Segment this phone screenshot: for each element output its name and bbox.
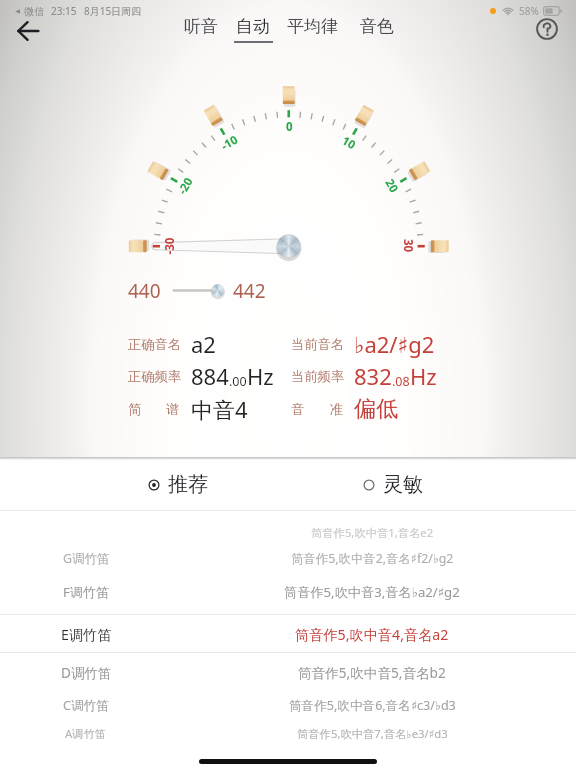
staticText: 正确频率 [128,368,182,385]
staticText: A调竹笛 [65,726,107,741]
staticText: E调竹笛 [61,625,112,644]
staticText: 推荐 [168,472,208,497]
staticText: 筒音作5,吹中音4,音名a2 [295,625,449,644]
staticText: 筒音作5,吹中音3,音名♭a2/♯g2 [284,583,460,601]
staticText: 平均律 [287,16,338,37]
button[interactable]: 平均律 [280,14,345,48]
staticText: 440 [128,278,161,303]
staticText: 听音 [184,16,218,37]
staticText: 音色 [360,16,394,37]
button[interactable]: D调竹笛 [0,653,576,690]
staticText: 谱 [166,401,180,418]
staticText: Hz [410,361,437,391]
staticText: 自动 [236,16,270,37]
button[interactable]: 音色 [353,14,400,48]
staticText: 832 [354,361,392,391]
staticText: F调竹笛 [63,583,110,601]
staticText: 准 [330,401,344,418]
staticText: 简 [128,401,142,418]
staticText: 当前音名 [291,336,345,353]
staticText: 0 [286,119,293,135]
button[interactable]: C调竹笛 [0,690,576,720]
staticText: G调竹笛 [63,550,110,567]
staticText: 30 [400,239,416,253]
staticText: 10 [339,133,359,153]
button[interactable]: 自动 [228,14,278,48]
button[interactable]: Back [8,11,48,51]
button[interactable]: Calibration slider [170,279,230,302]
button[interactable]: A调竹笛 [0,720,576,746]
button[interactable]: 推荐 [148,468,208,500]
staticText: 筒音作5,吹中音5,音名b2 [298,663,446,682]
button[interactable]: 灵敏 [363,468,423,500]
staticText: a2 [191,329,216,359]
staticText: D调竹笛 [61,663,112,682]
button[interactable]: 筒音作5,吹中音1,音名e2 [0,519,576,545]
staticText: Hz [247,361,274,391]
button[interactable]: E调竹笛 [0,615,576,653]
staticText: .00 [229,373,247,390]
button[interactable]: G调竹笛 [0,545,576,575]
staticText: 筒音作5,吹中音6,音名♯c3/♭d3 [289,697,456,714]
staticText: 20 [382,176,402,196]
staticText: 筒音作5,吹中音1,音名e2 [311,525,434,540]
staticText: 微信 [24,5,44,18]
staticText: 8月15日周四 [84,4,142,18]
staticText: 884 [191,361,229,391]
staticText: 58% [519,4,539,18]
button[interactable]: 听音 [177,14,224,48]
staticText: 442 [233,278,266,303]
staticText: 正确音名 [128,336,182,353]
staticText: -10 [218,132,241,154]
staticText: ♭a2/♯g2 [354,329,435,359]
staticText: C调竹笛 [63,697,109,714]
staticText: 筒音作5,吹中音2,音名♯f2/♭g2 [291,550,454,567]
staticText: 当前频率 [291,368,345,385]
staticText: 偏低 [354,395,398,423]
staticText: 灵敏 [383,472,423,497]
staticText: 中音4 [191,394,248,424]
staticText: -30 [161,237,177,254]
button[interactable]: F调竹笛 [0,575,576,615]
button[interactable]: Help [527,9,567,49]
staticText: .08 [392,373,410,390]
staticText: 筒音作5,吹中音7,音名♭e3/♯d3 [297,726,448,741]
staticText: 23:15 [51,4,77,18]
staticText: -20 [174,175,197,197]
staticText: 音 [291,401,305,418]
